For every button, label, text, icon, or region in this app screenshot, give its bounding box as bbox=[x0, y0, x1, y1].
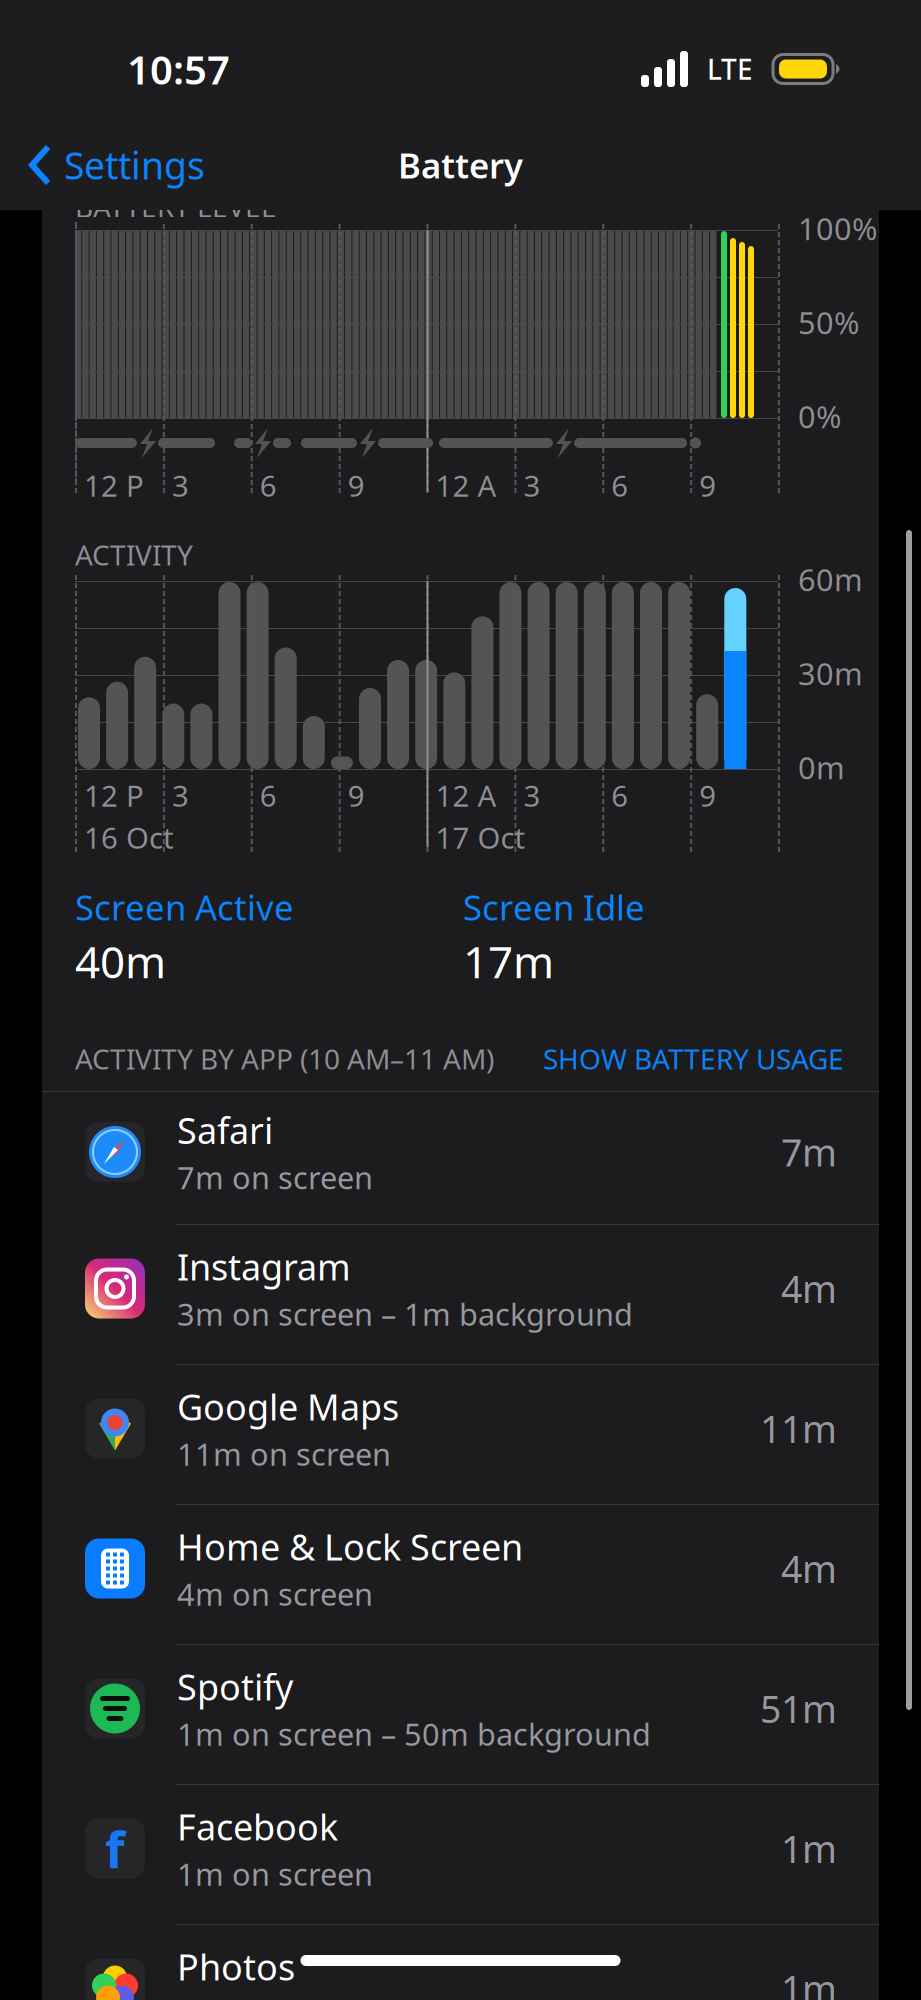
staticText: 1m on screen – 50m background bbox=[177, 1713, 651, 1754]
staticText: 17m bbox=[463, 932, 554, 990]
staticText: 7m on screen bbox=[177, 1157, 373, 1198]
staticText: 40m bbox=[75, 932, 166, 990]
staticText: Safari bbox=[177, 1106, 273, 1154]
staticText: Facebook bbox=[177, 1803, 338, 1850]
staticText: 6 bbox=[611, 466, 628, 505]
staticText: Screen Active bbox=[75, 884, 294, 930]
staticText: Screen Idle bbox=[463, 884, 645, 930]
staticText: 9 bbox=[348, 776, 365, 815]
staticText: 11m bbox=[760, 1404, 837, 1453]
staticText: 0m bbox=[798, 747, 845, 788]
staticText: Google Maps bbox=[177, 1383, 399, 1430]
staticText: 3 bbox=[172, 466, 189, 505]
staticText: BATTERY LEVEL bbox=[75, 188, 276, 225]
staticText: ACTIVITY BY APP (10 AM–11 AM) bbox=[75, 1040, 494, 1077]
staticText: 12 P bbox=[84, 776, 144, 815]
staticText: 6 bbox=[260, 776, 277, 815]
staticText: Spotify bbox=[177, 1663, 293, 1710]
staticText: 3 bbox=[172, 776, 189, 815]
staticText: 12 P bbox=[84, 466, 144, 505]
button[interactable]: Settings bbox=[0, 127, 223, 203]
button[interactable]: Photos bbox=[42, 1925, 879, 2000]
staticText: 10:57 bbox=[127, 42, 230, 95]
staticText: f bbox=[105, 1815, 125, 1882]
button[interactable]: f bbox=[42, 1785, 879, 1925]
staticText: 3 bbox=[523, 776, 540, 815]
staticText: Instagram bbox=[177, 1243, 351, 1290]
staticText: Photos bbox=[177, 1943, 295, 1990]
button[interactable]: Instagram bbox=[42, 1225, 879, 1365]
staticText: 50% bbox=[798, 302, 859, 343]
staticText: 9 bbox=[348, 466, 365, 505]
staticText: 12 A bbox=[435, 776, 496, 815]
staticText: 3m on screen – 1m background bbox=[177, 1293, 633, 1334]
staticText: 17 Oct bbox=[435, 818, 525, 857]
staticText: SHOW BATTERY USAGE bbox=[543, 1040, 844, 1077]
staticText: 60m bbox=[798, 559, 863, 600]
staticText: 100% bbox=[798, 208, 877, 249]
staticText: 3 bbox=[523, 466, 540, 505]
button[interactable]: Google Maps bbox=[42, 1365, 879, 1505]
staticText: Battery bbox=[398, 142, 523, 188]
staticText: 0% bbox=[798, 396, 841, 437]
staticText: LTE bbox=[707, 50, 753, 88]
staticText: 6 bbox=[611, 776, 628, 815]
staticText: 11m on screen bbox=[177, 1433, 391, 1474]
staticText: 12 A bbox=[435, 466, 496, 505]
staticText: 16 Oct bbox=[84, 818, 174, 857]
button[interactable]: Home & Lock Screen bbox=[42, 1505, 879, 1645]
staticText: 1m bbox=[781, 1824, 837, 1873]
button[interactable]: Safari bbox=[42, 1092, 879, 1225]
staticText: 6 bbox=[260, 466, 277, 505]
button[interactable]: SHOW BATTERY USAGE bbox=[543, 1040, 844, 1077]
staticText: 1m bbox=[781, 1964, 837, 2000]
staticText: 7m bbox=[781, 1127, 837, 1177]
staticText: 1m on screen bbox=[177, 1853, 373, 1894]
staticText: ACTIVITY bbox=[75, 536, 193, 573]
staticText: 9 bbox=[699, 466, 716, 505]
staticText: 4m bbox=[781, 1264, 837, 1313]
staticText: 4m on screen bbox=[177, 1573, 373, 1614]
staticText: 9 bbox=[699, 776, 716, 815]
staticText: 4m bbox=[781, 1544, 837, 1593]
staticText: Home & Lock Screen bbox=[177, 1523, 523, 1570]
staticText: 51m bbox=[760, 1684, 837, 1733]
staticText: 30m bbox=[798, 653, 863, 694]
staticText: Settings bbox=[64, 140, 205, 190]
button[interactable]: Spotify bbox=[42, 1645, 879, 1785]
